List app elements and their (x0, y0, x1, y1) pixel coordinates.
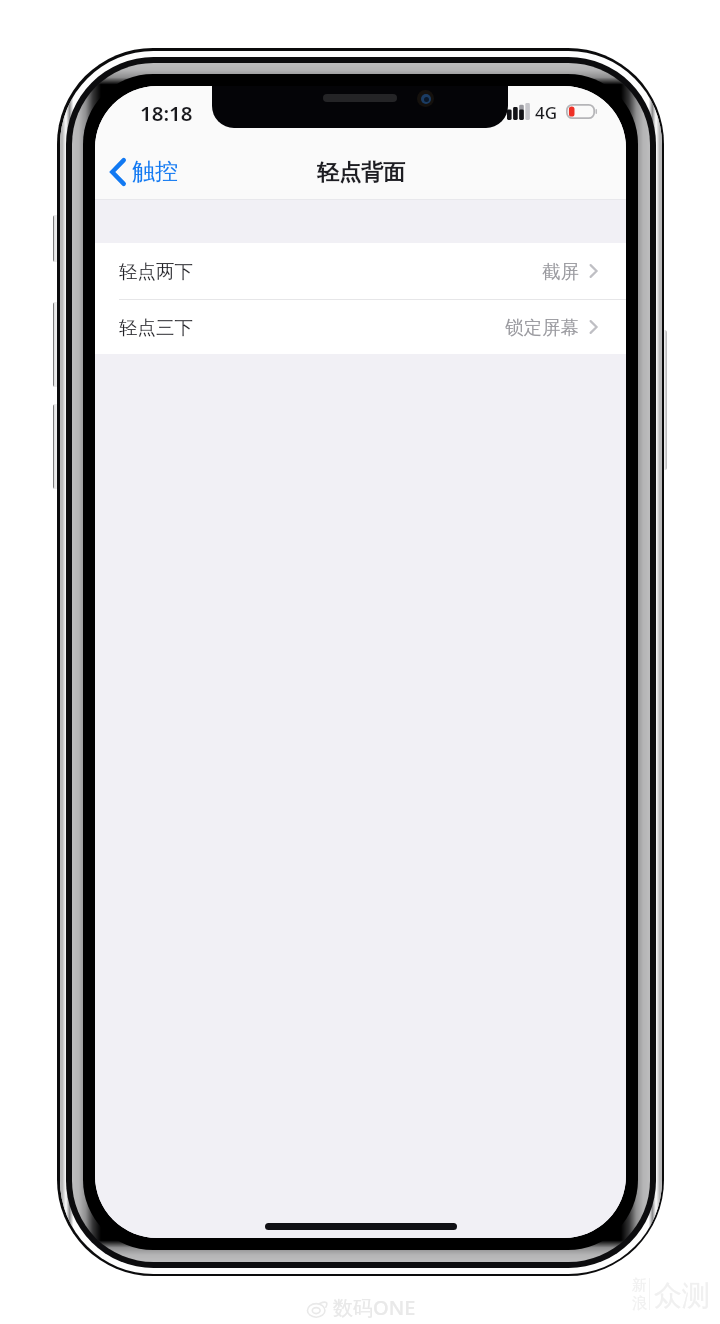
staticText: 锁定屏幕 (505, 316, 579, 339)
button[interactable]: 轻点三下 (95, 300, 626, 354)
staticText: 轻点背面 (317, 159, 405, 187)
button[interactable]: 轻点两下 (95, 243, 626, 299)
staticText: 触控 (132, 157, 178, 186)
staticText: 4G (535, 101, 558, 124)
other: Back (110, 158, 126, 186)
staticText: 众测 (654, 1278, 710, 1313)
staticText: 轻点三下 (119, 316, 193, 339)
button[interactable]: Back (95, 150, 188, 193)
staticText: 18:18 (140, 99, 193, 127)
staticText: 轻点两下 (119, 260, 193, 283)
staticText: 截屏 (542, 260, 579, 283)
staticText: 新 浪 (632, 1276, 647, 1312)
staticText: 数码ONE (333, 1294, 416, 1321)
